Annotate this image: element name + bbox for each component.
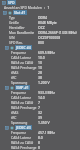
staticText: 7 bbox=[38, 105, 40, 110]
button[interactable]: Anzahl an SPD Modulen bbox=[0, 5, 80, 10]
button[interactable]: Spannung bbox=[0, 80, 80, 85]
button[interactable]: RAS# Precharge bbox=[0, 145, 80, 150]
staticText: 609.5 MHz bbox=[38, 50, 55, 55]
button[interactable]: Collapse XMP-#1 bbox=[0, 85, 80, 90]
other: Collapse SPD bbox=[2, 1, 6, 5]
button[interactable]: CAS# Latenz bbox=[0, 55, 80, 60]
button[interactable]: tRAS bbox=[0, 110, 80, 115]
button[interactable]: Frequenz bbox=[0, 50, 80, 55]
staticText: Slot #1 bbox=[14, 10, 26, 15]
staticText: 8 bbox=[38, 140, 40, 145]
staticText: 28 bbox=[38, 70, 42, 75]
button[interactable]: RAS# zu CAS# bbox=[0, 100, 80, 105]
button[interactable]: Hersteller bbox=[0, 25, 80, 30]
staticText: 14.0 bbox=[38, 95, 45, 100]
staticText: OCZ bbox=[38, 25, 45, 30]
button[interactable]: tRC bbox=[0, 115, 80, 120]
staticText: 10.0 bbox=[38, 55, 45, 60]
other: Collapse JEDEC #4 bbox=[5, 46, 9, 50]
staticText: 10 bbox=[38, 60, 42, 65]
staticText: 8.0 bbox=[38, 135, 43, 140]
staticText: 32 bbox=[38, 110, 42, 115]
staticText: tRC bbox=[11, 75, 17, 80]
button[interactable]: tRAS bbox=[0, 70, 80, 75]
staticText: SPD Rev. bbox=[9, 40, 23, 45]
staticText: JEDEC #3 bbox=[16, 125, 31, 130]
staticText: 8048 MByte bbox=[38, 20, 57, 25]
button[interactable]: CAS# Latenz bbox=[0, 95, 80, 100]
staticText: RAS# Precharge bbox=[11, 105, 37, 110]
staticText: 38 bbox=[38, 75, 42, 80]
button[interactable]: RAS# Precharge bbox=[0, 65, 80, 70]
button[interactable]: CAS# Latenz bbox=[0, 135, 80, 140]
button[interactable]: Collapse Slot #1 bbox=[0, 10, 80, 15]
staticText: 10 bbox=[38, 65, 42, 70]
staticText: Frequenz bbox=[11, 130, 26, 135]
staticText: SPD bbox=[8, 0, 15, 5]
button[interactable]: Collapse JEDEC #4 bbox=[0, 45, 80, 50]
staticText: Frequenz bbox=[11, 90, 26, 95]
staticText: RAS# zu CAS# bbox=[11, 140, 34, 145]
staticText: S/N bbox=[9, 35, 15, 40]
other: Collapse XMP-#1 bbox=[5, 86, 9, 90]
staticText: Frequenz bbox=[11, 50, 26, 55]
staticText: tRAS bbox=[11, 110, 19, 115]
staticText: Max Bandbreite bbox=[9, 30, 35, 35]
staticText: 1.350 V bbox=[38, 120, 50, 125]
staticText: 7 bbox=[38, 100, 40, 105]
staticText: RAS# Precharge bbox=[11, 65, 37, 70]
staticText: RAS# zu CAS# bbox=[11, 60, 34, 65]
button[interactable]: Collapse JEDEC #3 bbox=[0, 125, 80, 130]
staticText: OCZ0F100008 bbox=[38, 35, 61, 40]
button[interactable]: Frequenz bbox=[0, 130, 80, 135]
button[interactable]: RAS# zu CAS# bbox=[0, 140, 80, 145]
staticText: tRAS bbox=[11, 70, 19, 75]
button[interactable]: Frequenz bbox=[0, 90, 80, 95]
staticText: RAS# Precharge bbox=[11, 145, 37, 150]
button[interactable]: S/N bbox=[0, 35, 80, 40]
staticText: Spannung bbox=[11, 120, 28, 125]
button[interactable]: tRC bbox=[0, 75, 80, 80]
other: Collapse JEDEC #3 bbox=[5, 126, 9, 130]
button[interactable]: Max Bandbreite bbox=[0, 30, 80, 35]
staticText: RAS# zu CAS# bbox=[11, 100, 34, 105]
staticText: : 1 bbox=[44, 5, 50, 10]
staticText: Größe bbox=[9, 20, 19, 25]
staticText: JEDEC #4 bbox=[16, 45, 31, 50]
other: Collapse Slot #1 bbox=[3, 11, 7, 15]
staticText: CAS# Latenz bbox=[11, 135, 31, 140]
staticText: Anzahl an SPD Modulen bbox=[4, 5, 42, 10]
button[interactable]: RAS# Precharge bbox=[0, 105, 80, 110]
staticText: XMP-#1 bbox=[16, 85, 29, 90]
staticText: Typ bbox=[9, 15, 15, 20]
staticText: 8 bbox=[38, 145, 40, 150]
staticText: CAS# Latenz bbox=[11, 55, 31, 60]
staticText: tRC bbox=[11, 115, 17, 120]
staticText: 800 bbox=[38, 40, 44, 45]
button[interactable]: SPD Rev. bbox=[0, 40, 80, 45]
staticText: 39 bbox=[38, 115, 42, 120]
staticText: Spannung bbox=[11, 80, 28, 85]
staticText: Hersteller bbox=[9, 25, 25, 30]
button[interactable]: Collapse SPD bbox=[0, 0, 80, 5]
staticText: CAS# Latenz bbox=[11, 95, 31, 100]
button[interactable]: Spannung bbox=[0, 120, 80, 125]
button[interactable]: Größe bbox=[0, 20, 80, 25]
staticText: DDR4 bbox=[38, 15, 47, 20]
staticText: 1.200 V bbox=[38, 80, 50, 85]
staticText: 933.3 MHz bbox=[38, 90, 55, 95]
button[interactable]: RAS# zu CAS# bbox=[0, 60, 80, 65]
staticText: DDR4-2666P (1333 MHz) bbox=[38, 30, 77, 35]
button[interactable]: Typ bbox=[0, 15, 80, 20]
staticText: 457.1 MHz bbox=[38, 130, 55, 135]
